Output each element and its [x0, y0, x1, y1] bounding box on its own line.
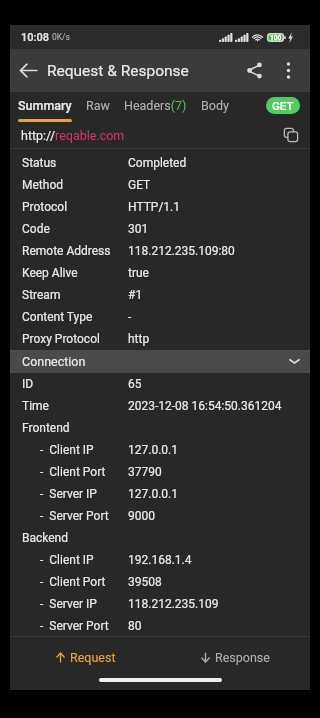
staticText: http: [128, 332, 150, 346]
staticText: Remote Address: [22, 244, 111, 258]
button[interactable]: Status: [10, 152, 310, 174]
button[interactable]: Request: [10, 637, 160, 677]
button[interactable]: - Client Port: [10, 461, 310, 483]
button[interactable]: - Server IP: [10, 483, 310, 505]
staticText: #1: [128, 288, 143, 302]
staticText: - Client Port: [40, 465, 106, 479]
staticText: HTTP/1.1: [128, 200, 180, 214]
button[interactable]: Summary: [10, 92, 79, 119]
button[interactable]: Protocol: [10, 196, 310, 218]
staticText: 39508: [128, 575, 162, 589]
staticText: Stream: [22, 288, 61, 302]
button[interactable]: Copy URL: [280, 124, 302, 146]
staticText: 118.212.235.109:80: [128, 244, 235, 258]
button[interactable]: Time: [10, 395, 310, 417]
staticText: - Client IP: [40, 443, 94, 457]
button[interactable]: - Server IP: [10, 593, 310, 615]
staticText: - Server Port: [40, 619, 109, 633]
staticText: Frontend: [22, 421, 70, 435]
staticText: GET: [272, 99, 294, 112]
button[interactable]: Stream: [10, 284, 310, 306]
staticText: true: [128, 266, 149, 280]
staticText: Headers(7): [124, 98, 187, 113]
staticText: Keep Alive: [22, 266, 78, 280]
staticText: - Server Port: [40, 509, 109, 523]
staticText: ID: [22, 377, 34, 391]
staticText: Method: [22, 178, 63, 192]
button[interactable]: - Server Port: [10, 505, 310, 527]
staticText: 192.168.1.4: [128, 553, 192, 567]
staticText: 100: [270, 34, 282, 42]
staticText: Protocol: [22, 200, 68, 214]
button[interactable]: Keep Alive: [10, 262, 310, 284]
button[interactable]: - Client Port: [10, 571, 310, 593]
button[interactable]: Frontend: [10, 417, 310, 439]
button[interactable]: Remote Address: [10, 240, 310, 262]
staticText: 9000: [128, 509, 155, 523]
staticText: Request: [70, 650, 116, 665]
staticText: Request & Response: [47, 62, 189, 80]
button[interactable]: ID: [10, 373, 310, 395]
staticText: Completed: [128, 156, 187, 170]
staticText: 2023-12-08 16:54:50.361204: [128, 399, 282, 413]
staticText: 301: [128, 222, 149, 236]
button[interactable]: - Server Port: [10, 615, 310, 636]
staticText: Status: [22, 156, 57, 170]
staticText: 127.0.0.1: [128, 487, 178, 501]
staticText: -: [128, 310, 132, 324]
staticText: GET: [128, 178, 151, 192]
button[interactable]: Share: [236, 49, 272, 92]
button[interactable]: Proxy Protocol: [10, 328, 310, 350]
button[interactable]: Content Type: [10, 306, 310, 328]
staticText: 127.0.0.1: [128, 443, 178, 457]
staticText: - Server IP: [40, 487, 97, 501]
button[interactable]: Raw: [79, 92, 117, 119]
staticText: Content Type: [22, 310, 93, 324]
button[interactable]: Body: [194, 92, 236, 119]
staticText: 80: [128, 619, 142, 633]
button[interactable]: Method: [10, 174, 310, 196]
staticText: Summary: [18, 98, 72, 113]
button[interactable]: Response: [160, 637, 310, 677]
button[interactable]: More options: [272, 49, 304, 92]
staticText: 118.212.235.109: [128, 597, 219, 611]
button[interactable]: - Client IP: [10, 549, 310, 571]
staticText: Body: [201, 98, 229, 113]
staticText: 37790: [128, 465, 162, 479]
button[interactable]: Connection: [10, 350, 310, 373]
staticText: Time: [22, 399, 49, 413]
staticText: http://reqable.com: [21, 128, 125, 143]
staticText: - Server IP: [40, 597, 97, 611]
staticText: Connection: [22, 354, 86, 369]
staticText: 10:08: [21, 31, 49, 44]
button[interactable]: Backend: [10, 527, 310, 549]
staticText: Proxy Protocol: [22, 332, 100, 346]
staticText: Backend: [22, 531, 69, 545]
staticText: Raw: [86, 98, 110, 113]
staticText: Code: [22, 222, 50, 236]
button[interactable]: - Client IP: [10, 439, 310, 461]
staticText: - Client Port: [40, 575, 106, 589]
button[interactable]: Back: [10, 49, 47, 92]
staticText: 65: [128, 377, 142, 391]
staticText: Response: [215, 650, 270, 665]
staticText: - Client IP: [40, 553, 94, 567]
button[interactable]: GET: [266, 97, 300, 114]
staticText: 0K/s: [52, 32, 71, 42]
button[interactable]: Code: [10, 218, 310, 240]
button[interactable]: Headers(7): [117, 92, 194, 119]
